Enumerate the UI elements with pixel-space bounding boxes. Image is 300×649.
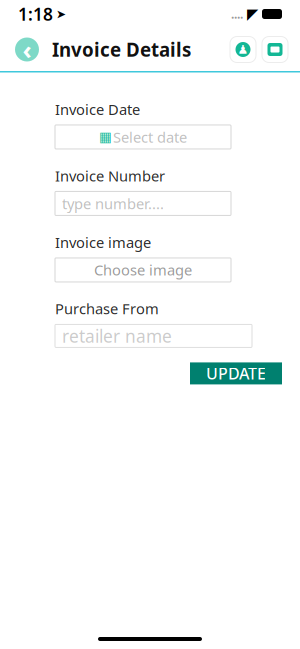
button[interactable]: retailer name <box>55 324 252 347</box>
staticText: Invoice Details <box>52 37 191 62</box>
staticText: ▦ <box>99 129 112 144</box>
staticText: retailer name <box>62 324 172 347</box>
staticText: Choose image <box>94 260 192 280</box>
staticText: ♟ <box>237 43 248 56</box>
button[interactable]: Notifications <box>230 36 256 62</box>
staticText: ◤ <box>247 6 258 22</box>
button[interactable]: Messages <box>262 36 288 62</box>
staticText: UPDATE <box>206 363 266 384</box>
staticText: Invoice Date <box>55 99 140 119</box>
staticText: Select date <box>113 127 187 147</box>
staticText: 1:18 <box>18 2 53 25</box>
staticText: Purchase From <box>55 299 159 318</box>
staticText: Invoice image <box>55 232 151 252</box>
staticText: ‹ <box>22 33 31 66</box>
button[interactable]: Back <box>12 34 42 64</box>
staticText: Invoice Number <box>55 166 165 185</box>
staticText: type number.... <box>62 194 164 213</box>
button[interactable]: ▦ <box>55 125 231 149</box>
staticText: ➤ <box>56 7 66 21</box>
button[interactable]: UPDATE <box>190 362 282 384</box>
staticText: .... <box>231 6 243 22</box>
button[interactable]: Choose image <box>55 258 231 282</box>
button[interactable]: type number.... <box>55 191 231 215</box>
